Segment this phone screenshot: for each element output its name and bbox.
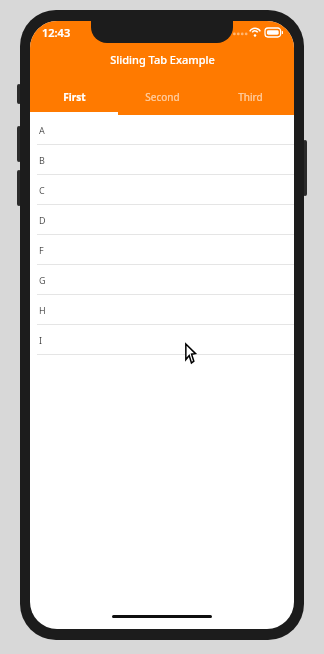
staticText: Third: [238, 90, 263, 104]
button[interactable]: F: [30, 235, 294, 265]
staticText: B: [39, 154, 45, 166]
button[interactable]: B: [30, 145, 294, 175]
button[interactable]: First: [30, 82, 118, 112]
staticText: First: [63, 90, 86, 104]
button[interactable]: D: [30, 205, 294, 235]
button[interactable]: C: [30, 175, 294, 205]
other: Home indicator: [112, 615, 212, 618]
staticText: C: [39, 184, 45, 196]
staticText: Second: [145, 90, 180, 104]
staticText: D: [39, 214, 46, 226]
button[interactable]: I: [30, 325, 294, 355]
staticText: I: [39, 334, 43, 346]
button[interactable]: A: [30, 115, 294, 145]
staticText: G: [39, 274, 46, 286]
button[interactable]: Second: [118, 82, 206, 112]
staticText: Sliding Tab Example: [110, 52, 215, 67]
staticText: 12:43: [42, 25, 71, 40]
button[interactable]: H: [30, 295, 294, 325]
staticText: H: [39, 304, 46, 316]
button[interactable]: Third: [206, 82, 294, 112]
button[interactable]: G: [30, 265, 294, 295]
staticText: A: [39, 124, 45, 136]
staticText: F: [39, 244, 44, 256]
